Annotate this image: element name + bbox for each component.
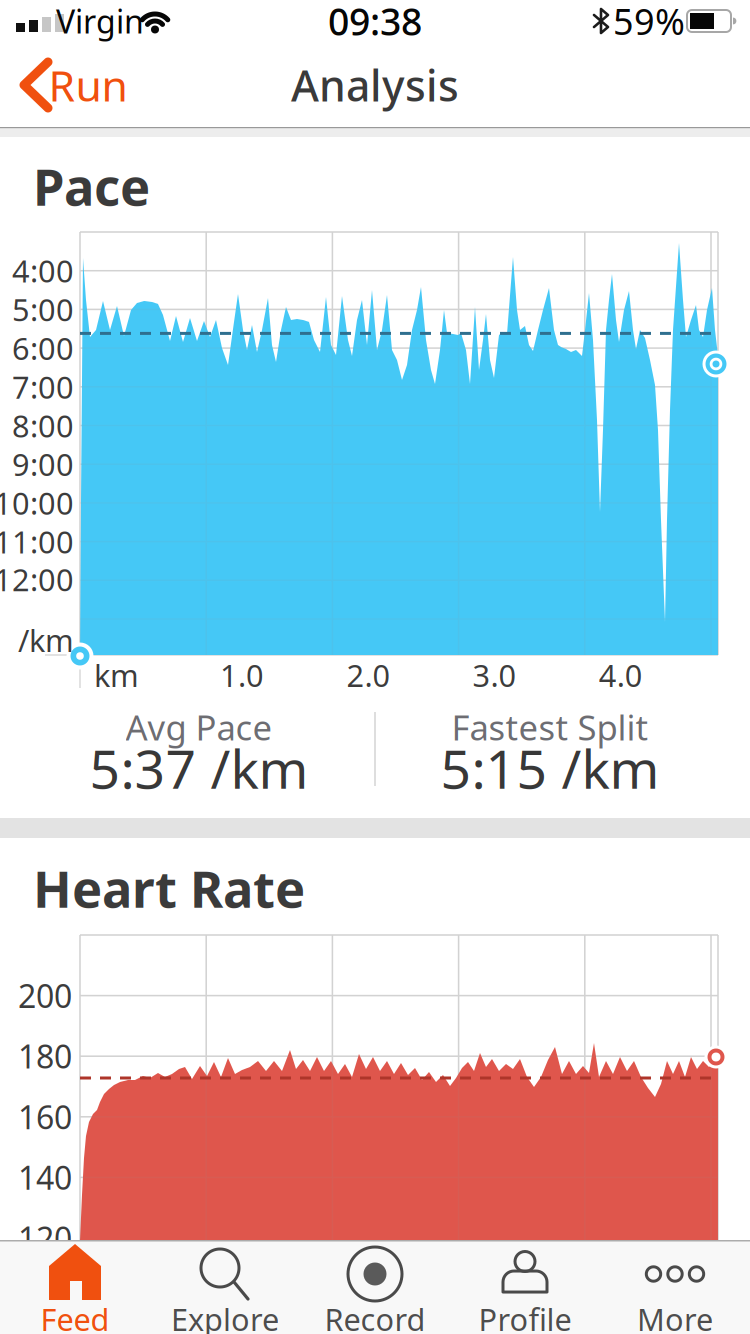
staticText: /km xyxy=(18,620,74,660)
staticText: 200 xyxy=(18,974,72,1017)
button[interactable]: Back to Run xyxy=(12,55,128,115)
button[interactable]: Explore xyxy=(150,1240,300,1334)
staticText: km xyxy=(94,655,139,695)
staticText: 160 xyxy=(18,1096,72,1138)
staticText: 10:00 xyxy=(0,482,74,523)
staticText: Pace xyxy=(33,152,150,220)
staticText: 8:00 xyxy=(12,405,74,446)
staticText: 11:00 xyxy=(0,521,74,562)
staticText: 5:37 /km xyxy=(89,733,308,803)
staticText: 140 xyxy=(18,1156,72,1199)
staticText: Heart Rate xyxy=(33,854,305,922)
staticText: 1.0 xyxy=(220,655,264,695)
staticText: 2.0 xyxy=(346,655,390,695)
staticText: Record xyxy=(324,1299,425,1334)
button[interactable]: Profile xyxy=(450,1240,600,1334)
staticText: 7:00 xyxy=(12,366,74,407)
staticText: 3.0 xyxy=(473,655,517,695)
staticText: 120 xyxy=(18,1217,72,1259)
staticText: Profile xyxy=(478,1299,571,1334)
staticText: 180 xyxy=(18,1035,72,1077)
staticText: 12:00 xyxy=(0,559,74,600)
staticText: 4.0 xyxy=(599,655,643,695)
staticText: Virgin xyxy=(56,0,144,42)
button[interactable]: Record xyxy=(300,1240,450,1334)
staticText: Run xyxy=(48,57,127,113)
staticText: More xyxy=(637,1299,713,1334)
staticText: 59% xyxy=(613,0,685,45)
staticText: Analysis xyxy=(291,57,459,113)
button[interactable]: More xyxy=(600,1240,750,1334)
staticText: 09:38 xyxy=(328,0,422,46)
staticText: 5:00 xyxy=(12,289,74,330)
button[interactable]: Feed xyxy=(0,1240,150,1334)
staticText: Fastest Split xyxy=(451,704,648,750)
staticText: 5:15 /km xyxy=(440,733,659,803)
staticText: 4:00 xyxy=(12,250,74,291)
staticText: 6:00 xyxy=(12,328,74,368)
staticText: Explore xyxy=(171,1299,279,1334)
staticText: Feed xyxy=(40,1299,109,1334)
staticText: 9:00 xyxy=(12,444,74,484)
staticText: Avg Pace xyxy=(125,704,272,750)
